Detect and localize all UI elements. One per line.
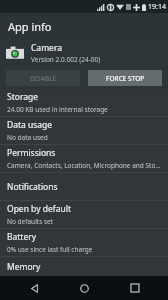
staticText: FORCE STOP — [106, 74, 145, 83]
staticText: App info — [8, 19, 52, 34]
staticText: Notifications — [7, 181, 58, 193]
staticText: 19:14 — [148, 2, 166, 12]
staticText: 0% use since last full charge — [7, 245, 93, 254]
button[interactable]: Memory — [0, 257, 168, 276]
staticText: Permissions — [7, 147, 56, 159]
button[interactable]: Storage — [0, 89, 168, 116]
button[interactable]: Home — [67, 276, 101, 300]
button[interactable]: Camera — [0, 39, 168, 67]
staticText: No defaults set — [7, 217, 54, 226]
button[interactable]: Recent apps — [118, 276, 152, 300]
button[interactable]: DISABLE — [6, 70, 80, 86]
staticText: Open by default — [7, 203, 71, 215]
staticText: 24.00 KB used in internal storage — [7, 105, 108, 114]
button[interactable]: Notifications — [0, 173, 168, 200]
staticText: Camera — [31, 42, 62, 54]
staticText: No data used — [7, 133, 48, 142]
staticText: Data usage — [7, 119, 53, 131]
staticText: Memory — [7, 261, 41, 273]
staticText: Version 2.0.002 (24-00) — [31, 55, 101, 64]
button[interactable]: Permissions — [0, 145, 168, 172]
button[interactable]: Back — [17, 276, 51, 300]
button[interactable]: Battery — [0, 229, 168, 256]
staticText: Battery — [7, 231, 37, 243]
button[interactable]: Data usage — [0, 117, 168, 144]
staticText: DISABLE — [30, 74, 57, 83]
staticText: Storage — [7, 91, 39, 103]
staticText: Camera, Contacts, Location, Microphone a… — [7, 161, 161, 170]
button[interactable]: Open by default — [0, 201, 168, 228]
button[interactable]: FORCE STOP — [88, 70, 162, 86]
